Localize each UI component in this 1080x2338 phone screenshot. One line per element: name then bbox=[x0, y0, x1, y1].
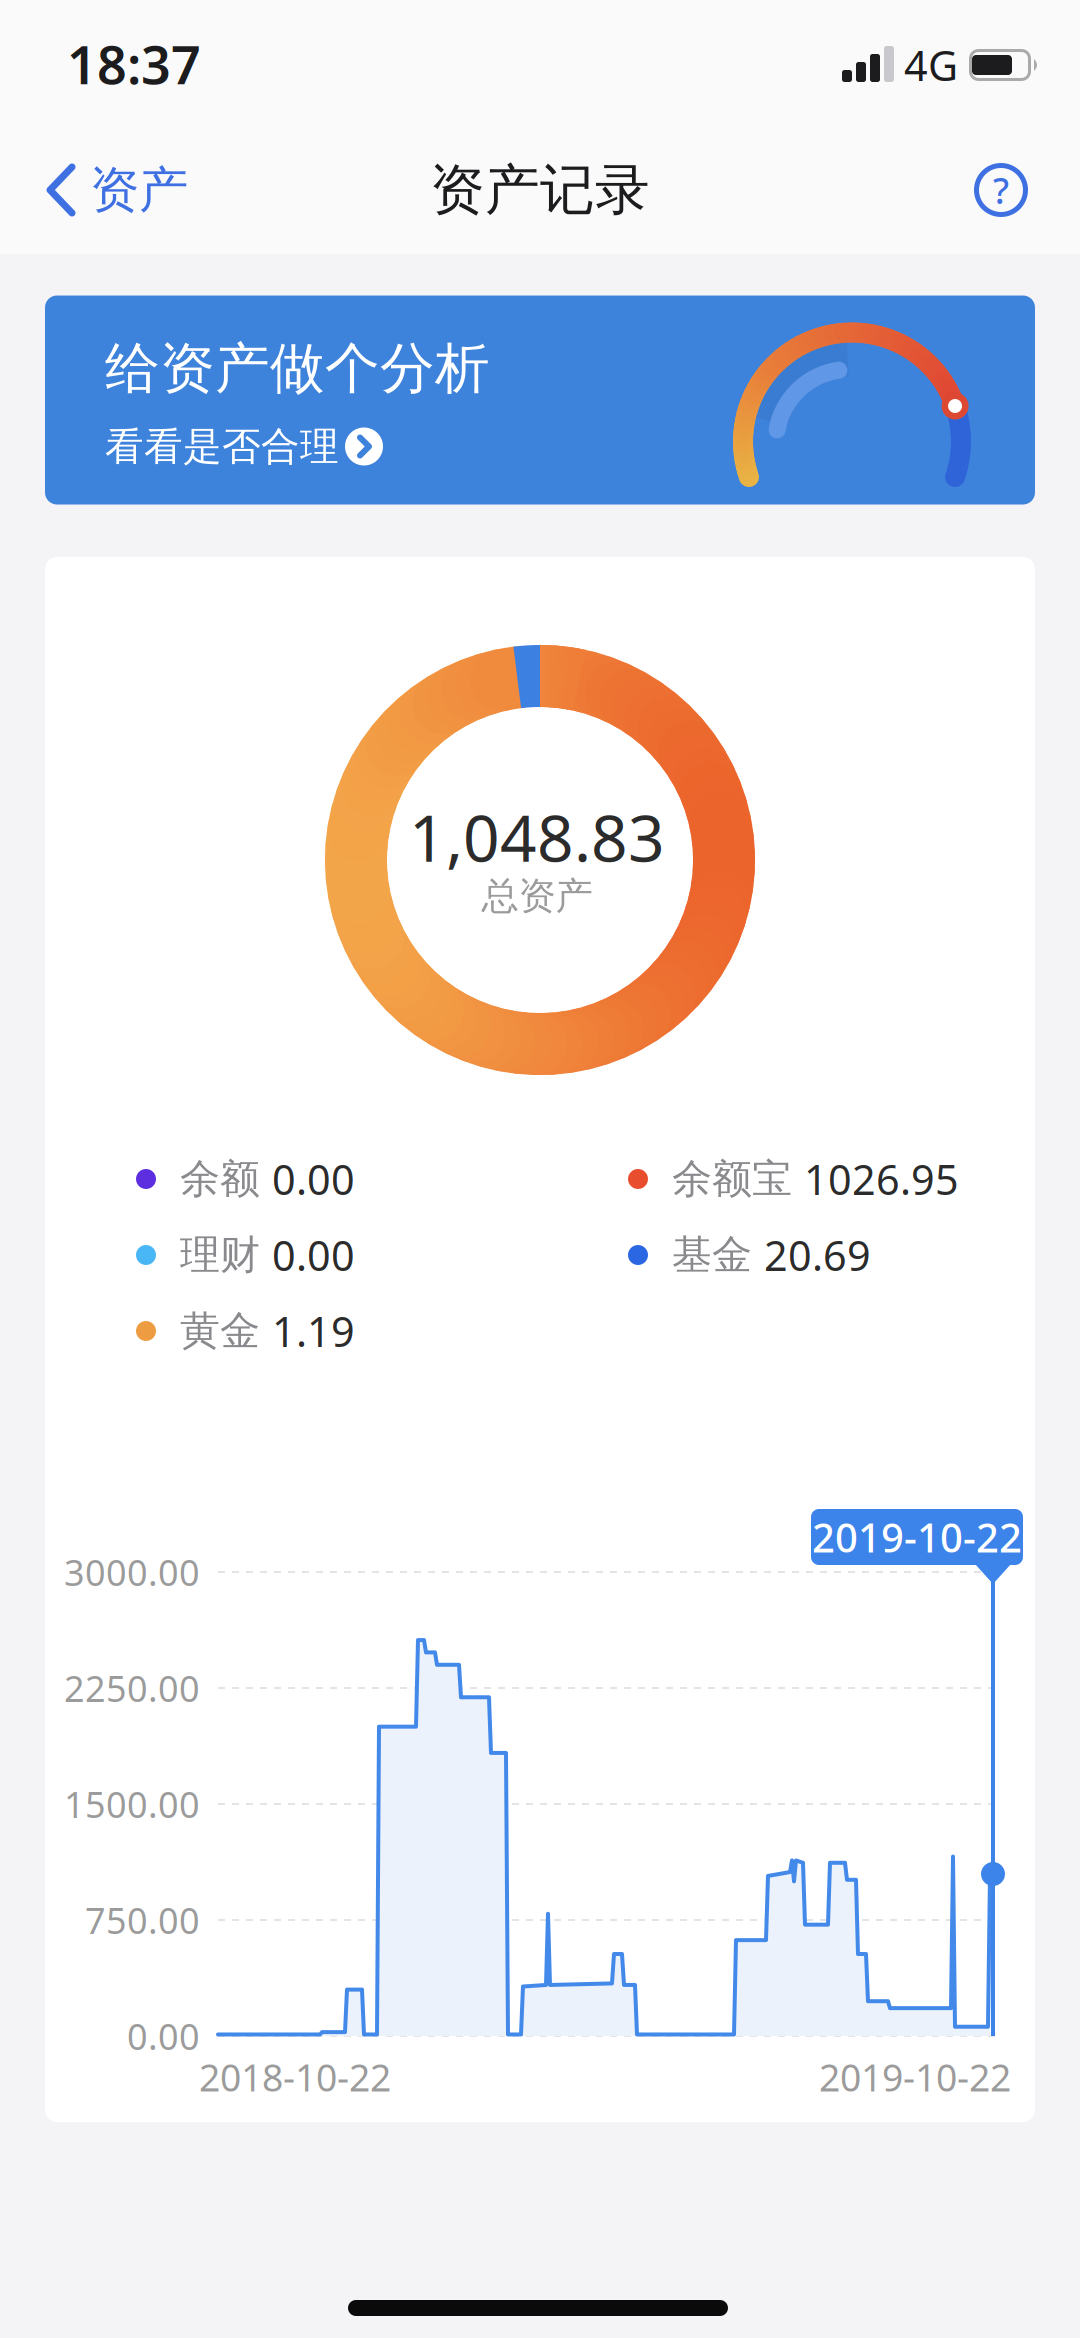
staticText: 0.00 bbox=[127, 2012, 200, 2060]
staticText: 2019-10-22 bbox=[812, 1510, 1022, 1563]
staticText: ? bbox=[993, 166, 1009, 214]
button[interactable]: 给资产做个分析 bbox=[45, 295, 1035, 504]
staticText: 理财 bbox=[180, 1230, 260, 1279]
staticText: 看看是否合理 bbox=[105, 423, 339, 470]
staticText: 1026.95 bbox=[804, 1152, 959, 1206]
staticText: 1.19 bbox=[272, 1304, 355, 1358]
staticText: 0.00 bbox=[272, 1228, 355, 1282]
staticText: 黄金 bbox=[180, 1306, 260, 1355]
staticText: 3000.00 bbox=[64, 1548, 200, 1596]
staticText: 750.00 bbox=[85, 1896, 200, 1944]
staticText: 0.00 bbox=[272, 1152, 355, 1206]
button[interactable]: 资产 bbox=[46, 160, 188, 220]
button[interactable]: 帮助 bbox=[974, 163, 1028, 217]
staticText: 资产记录 bbox=[430, 156, 650, 223]
staticText: 1500.00 bbox=[64, 1780, 200, 1828]
staticText: 2250.00 bbox=[64, 1664, 200, 1712]
staticText: 2018-10-22 bbox=[199, 2052, 391, 2102]
staticText: 4G bbox=[904, 38, 958, 92]
staticText: 1,048.83 bbox=[409, 794, 665, 879]
staticText: 余额 bbox=[180, 1154, 260, 1203]
staticText: 余额宝 bbox=[672, 1154, 792, 1203]
staticText: 给资产做个分析 bbox=[105, 335, 490, 402]
staticText: 总资产 bbox=[481, 873, 592, 919]
staticText: 2019-10-22 bbox=[819, 2052, 1011, 2102]
staticText: 18:37 bbox=[67, 29, 201, 99]
staticText: 20.69 bbox=[764, 1228, 871, 1282]
staticText: 基金 bbox=[672, 1230, 752, 1279]
staticText: 资产 bbox=[90, 160, 188, 220]
